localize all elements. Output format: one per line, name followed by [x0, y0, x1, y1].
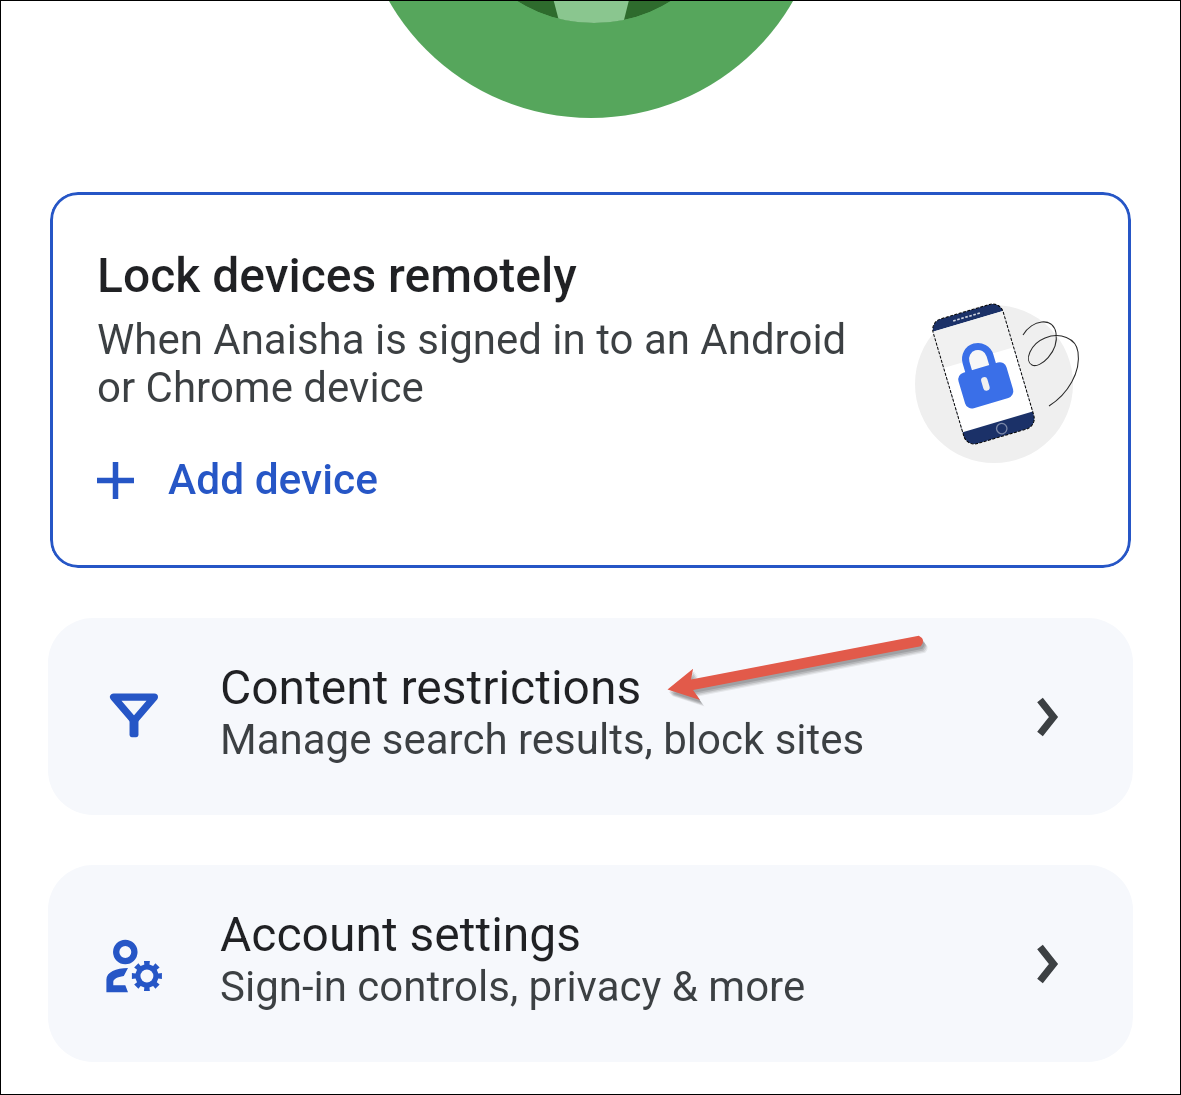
staticText: Manage search results, block sites	[220, 715, 865, 764]
staticText: Lock devices remotely	[97, 247, 577, 303]
button[interactable]: Filter	[48, 618, 1133, 815]
other: Open	[1035, 693, 1083, 741]
other: Open	[1035, 940, 1083, 988]
other: Account settings	[104, 934, 164, 994]
staticText: Sign-in controls, privacy & more	[220, 962, 806, 1011]
button[interactable]: Add device	[97, 445, 378, 515]
staticText: When Anaisha is signed in to an Android …	[97, 315, 847, 412]
staticText: Account settings	[220, 906, 582, 962]
other: Filter	[110, 693, 158, 741]
staticText: Content restrictions	[220, 659, 642, 715]
staticText: Add device	[168, 455, 378, 505]
button[interactable]: Account settings	[48, 865, 1133, 1062]
